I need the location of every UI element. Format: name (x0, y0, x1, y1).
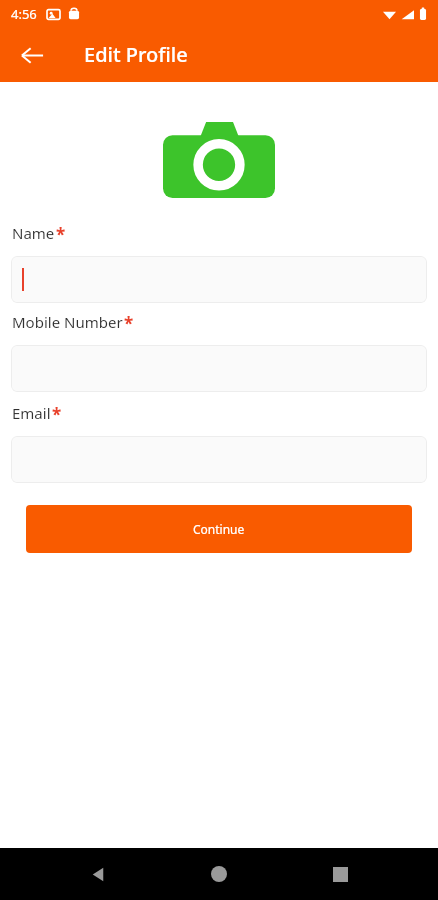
staticText: Edit Profile (84, 41, 188, 68)
button[interactable]: Back (10, 33, 54, 77)
staticText: Continue (193, 521, 245, 537)
staticText: Email (12, 403, 51, 423)
staticText: Name (12, 223, 55, 243)
button[interactable]: Back (75, 851, 121, 897)
staticText: * (124, 312, 134, 335)
button[interactable]: Home (196, 851, 242, 897)
button[interactable]: Change profile photo (163, 122, 275, 198)
staticText: * (56, 223, 66, 246)
staticText: * (52, 403, 62, 426)
button[interactable]: Continue (26, 505, 412, 553)
staticText: 4:56 (11, 5, 37, 23)
button[interactable] (11, 256, 427, 303)
button[interactable]: Recent apps (317, 851, 363, 897)
staticText: Mobile Number (12, 312, 123, 332)
